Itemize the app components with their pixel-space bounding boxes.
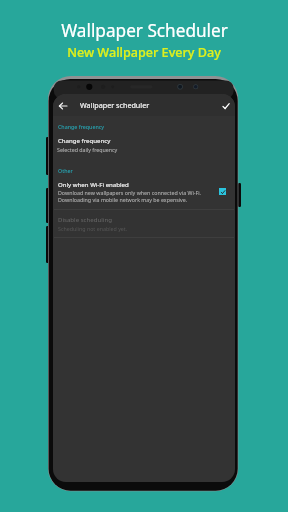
staticText: New Wallpaper Every Day	[67, 44, 221, 61]
staticText: Change frequency	[58, 123, 105, 130]
button[interactable]	[53, 210, 235, 236]
button[interactable]	[53, 133, 235, 155]
staticText: Scheduling not enabled yet.	[58, 225, 128, 232]
staticText: Download new wallpapers only when connec…	[58, 189, 202, 196]
button[interactable]: Save	[216, 96, 235, 116]
staticText: Downloading via mobile network may be ex…	[58, 196, 188, 203]
button[interactable]	[53, 177, 235, 205]
button[interactable]: Navigate up	[53, 96, 73, 116]
staticText: Other	[58, 167, 73, 174]
staticText: Wallpaper scheduler	[80, 100, 150, 110]
staticText: Wallpaper Scheduler	[61, 19, 228, 42]
staticText: Selected daily frequency	[57, 146, 118, 153]
staticText: Change frequency	[58, 136, 111, 144]
staticText: Disable scheduling	[58, 215, 112, 223]
staticText: Only when Wi-Fi enabled	[58, 180, 129, 188]
